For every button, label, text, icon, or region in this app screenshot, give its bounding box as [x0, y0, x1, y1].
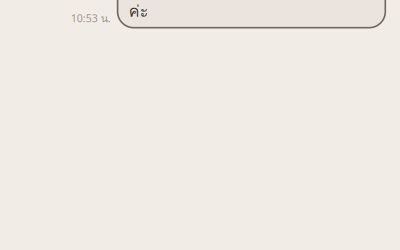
- staticText: 10:53 น.: [71, 10, 111, 27]
- staticText: ค่ะ: [129, 0, 149, 23]
- button[interactable]: ค่ะ: [117, 0, 386, 28]
